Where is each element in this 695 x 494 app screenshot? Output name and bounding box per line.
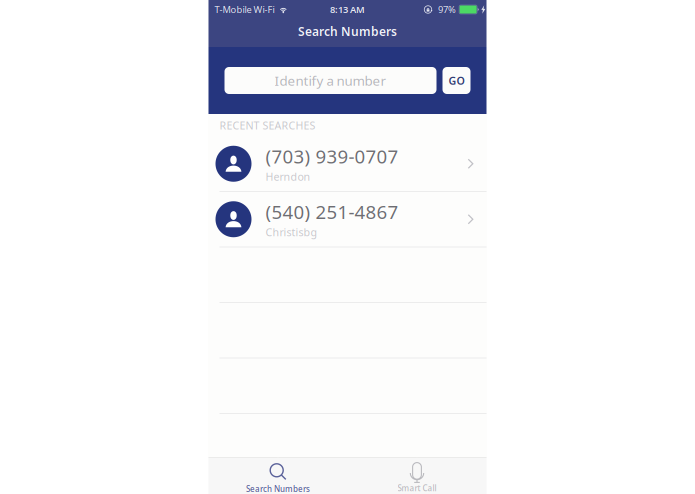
staticText: Christisbg xyxy=(265,225,317,239)
staticText: RECENT SEARCHES xyxy=(219,118,315,132)
staticText: (703) 939-0707 xyxy=(265,144,398,169)
staticText: Smart Call xyxy=(397,483,436,493)
button[interactable]: (703) 939-0707 xyxy=(208,136,486,192)
staticText: Search Numbers xyxy=(246,484,310,494)
button[interactable]: Search Numbers xyxy=(208,458,347,494)
staticText: Search Numbers xyxy=(298,23,397,39)
staticText: Herndon xyxy=(265,170,310,184)
staticText: Identify a number xyxy=(274,72,386,89)
staticText: (540) 251-4867 xyxy=(265,199,398,224)
button[interactable]: Smart Call xyxy=(347,458,486,494)
button[interactable]: (540) 251-4867 xyxy=(208,192,486,247)
button[interactable]: GO xyxy=(442,67,470,94)
staticText: 8:13 AM xyxy=(330,3,365,16)
staticText: GO xyxy=(448,73,464,88)
staticText: T-Mobile Wi-Fi xyxy=(214,3,274,16)
button[interactable]: Identify a number xyxy=(224,67,436,94)
staticText: 97% xyxy=(438,3,456,16)
